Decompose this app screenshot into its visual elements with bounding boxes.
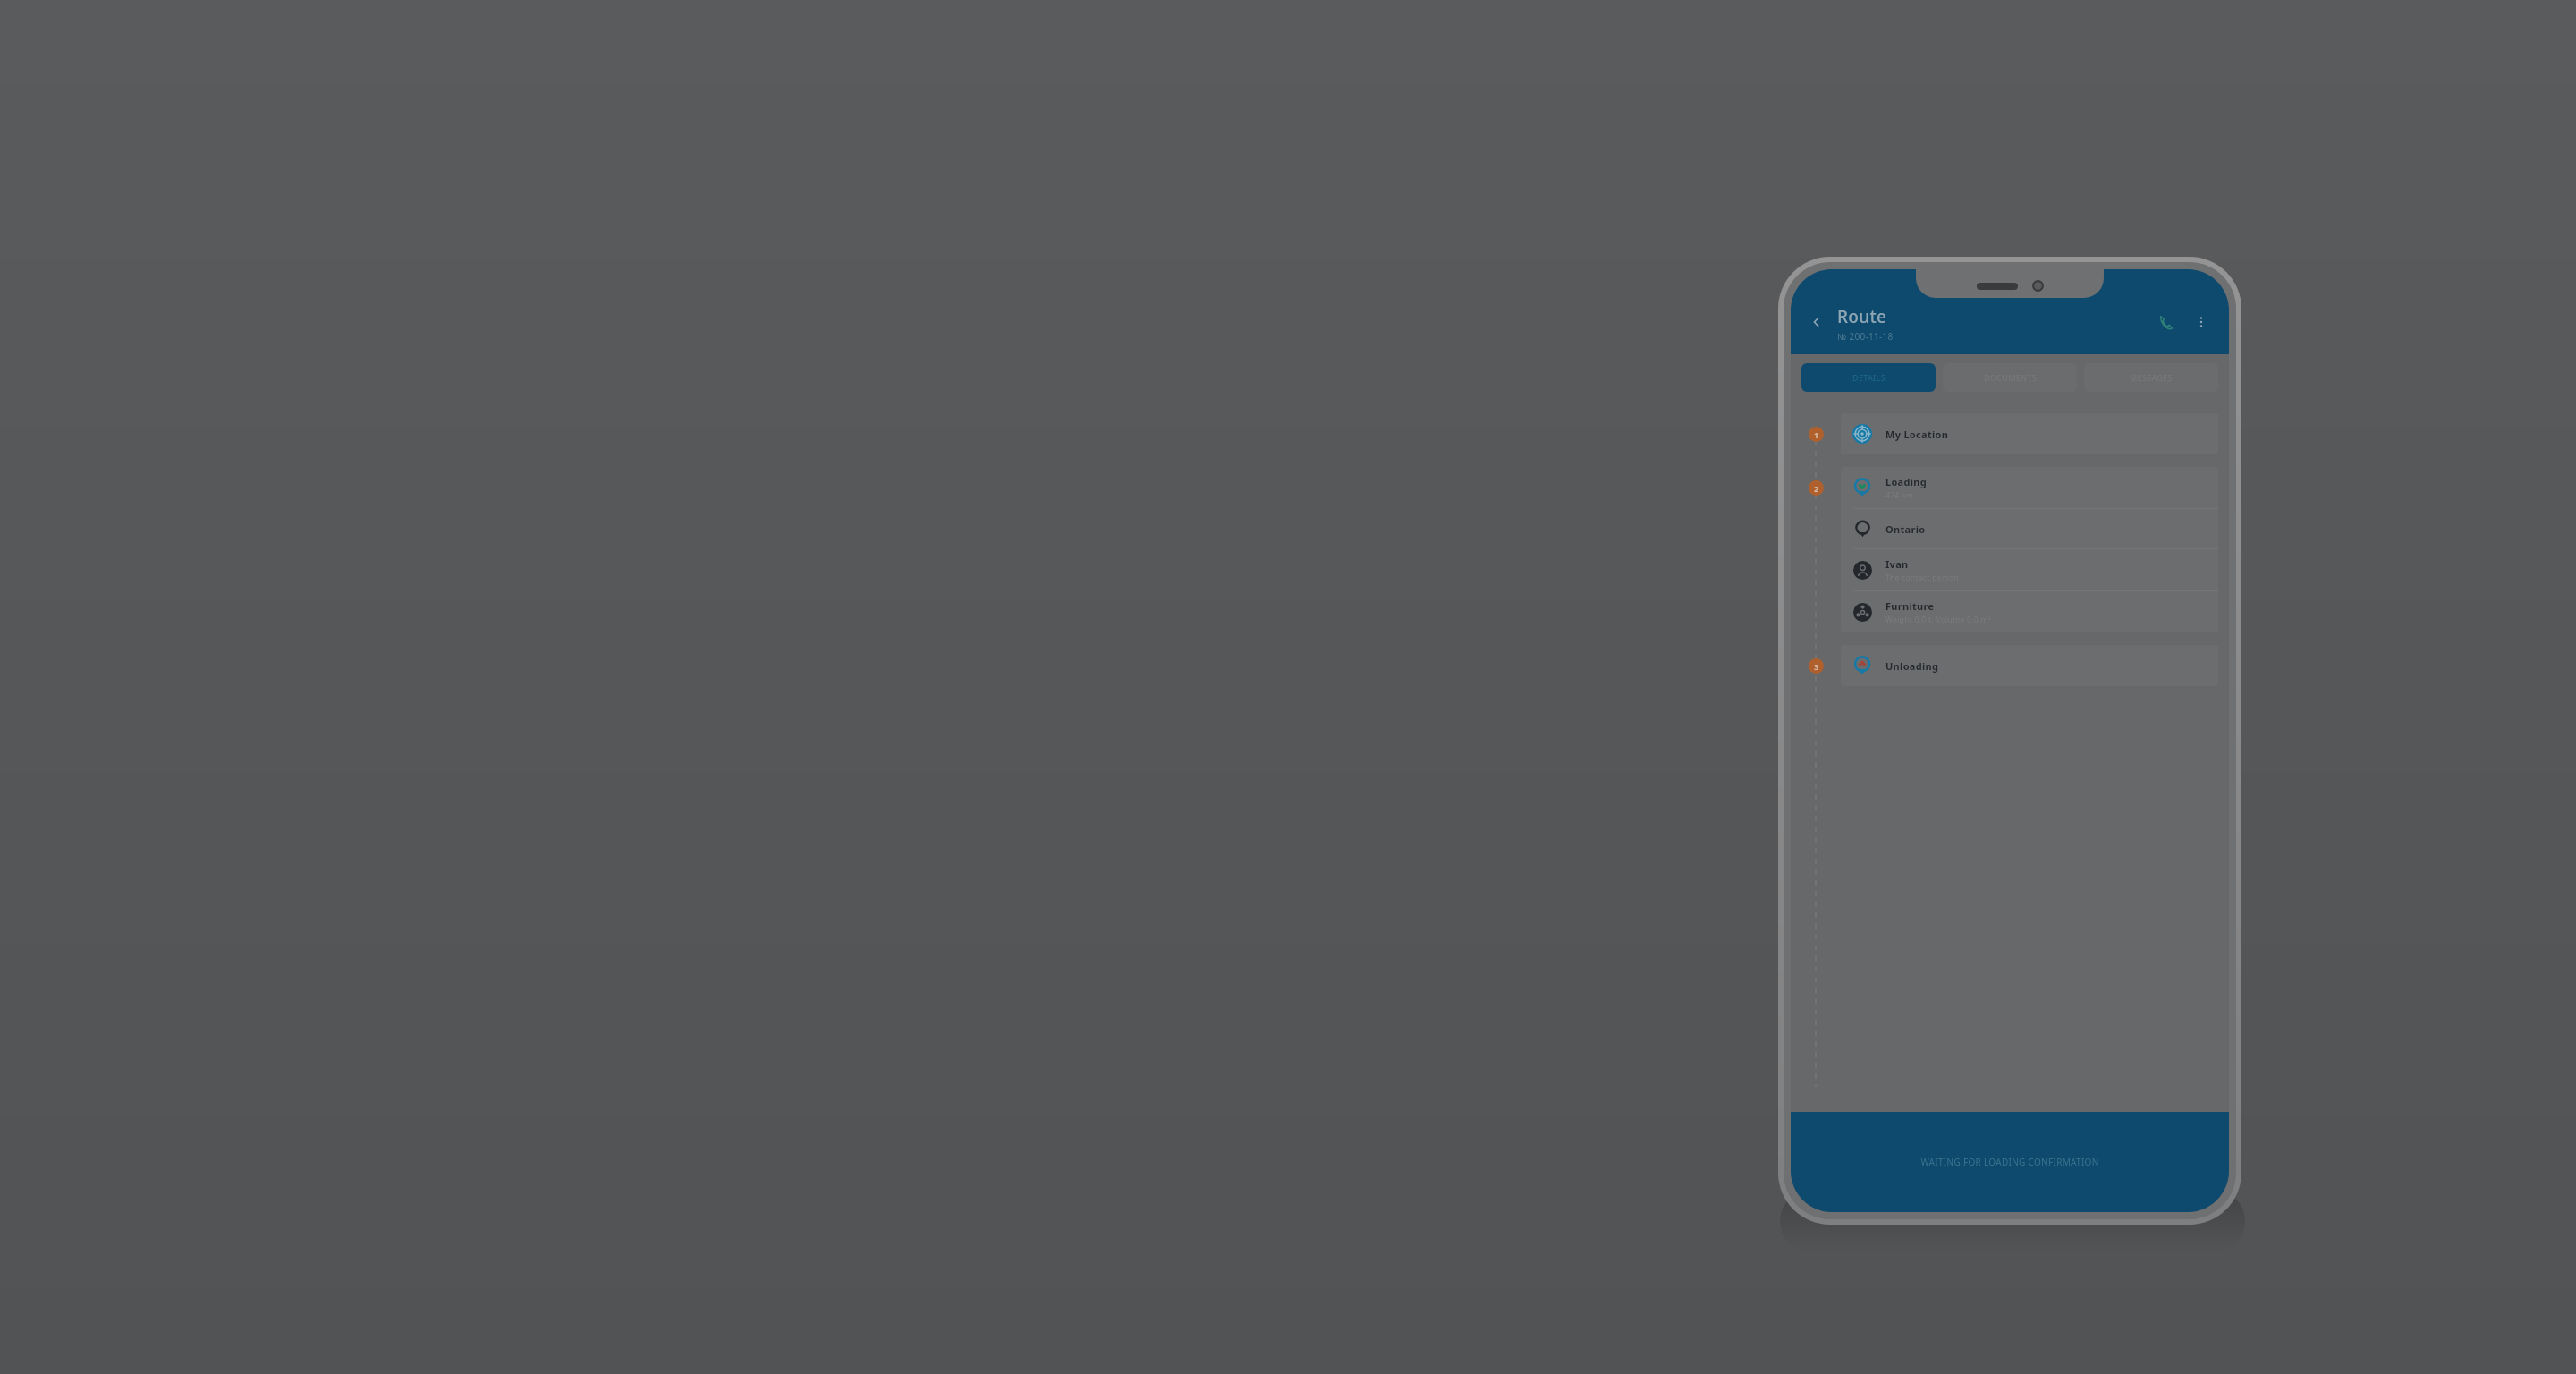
button[interactable]: Unloading	[1841, 645, 2218, 686]
staticText: Weight 0.0 t, Volume 0.0 m³	[1885, 615, 1991, 625]
staticText: My Location	[1885, 428, 1949, 441]
staticText: Unloading	[1885, 659, 1939, 673]
staticText: WAITING FOR LOADING CONFIRMATION	[1920, 1156, 2099, 1168]
button[interactable]: Call	[2152, 309, 2179, 335]
staticText: DOCUMENTS	[1984, 372, 2037, 383]
staticText: 2	[1814, 483, 1819, 494]
button[interactable]: Ontario	[1841, 509, 2218, 548]
staticText: The contact person	[1885, 572, 1960, 583]
staticText: Ontario	[1885, 522, 1926, 536]
button[interactable]: DETAILS	[1801, 363, 1936, 392]
button[interactable]: WAITING FOR LOADING CONFIRMATION	[1791, 1112, 2229, 1212]
staticText: 474 km	[1885, 490, 1914, 501]
staticText: MESSAGES	[2130, 372, 2173, 383]
button[interactable]: Back	[1803, 309, 1830, 335]
staticText: 1	[1814, 429, 1819, 440]
button[interactable]: More options	[2188, 309, 2215, 335]
staticText: Furniture	[1885, 599, 1935, 613]
staticText: 3	[1814, 661, 1819, 672]
staticText: DETAILS	[1852, 372, 1885, 383]
button[interactable]: Furniture	[1841, 591, 2218, 632]
button[interactable]: Ivan	[1841, 549, 2218, 590]
staticText: Ivan	[1885, 557, 1909, 571]
button[interactable]: Loading	[1841, 467, 2218, 508]
button[interactable]: My Location	[1841, 413, 2218, 454]
staticText: № 200-11-18	[1837, 330, 1894, 343]
staticText: Loading	[1885, 475, 1928, 488]
staticText: Route	[1837, 305, 1887, 328]
